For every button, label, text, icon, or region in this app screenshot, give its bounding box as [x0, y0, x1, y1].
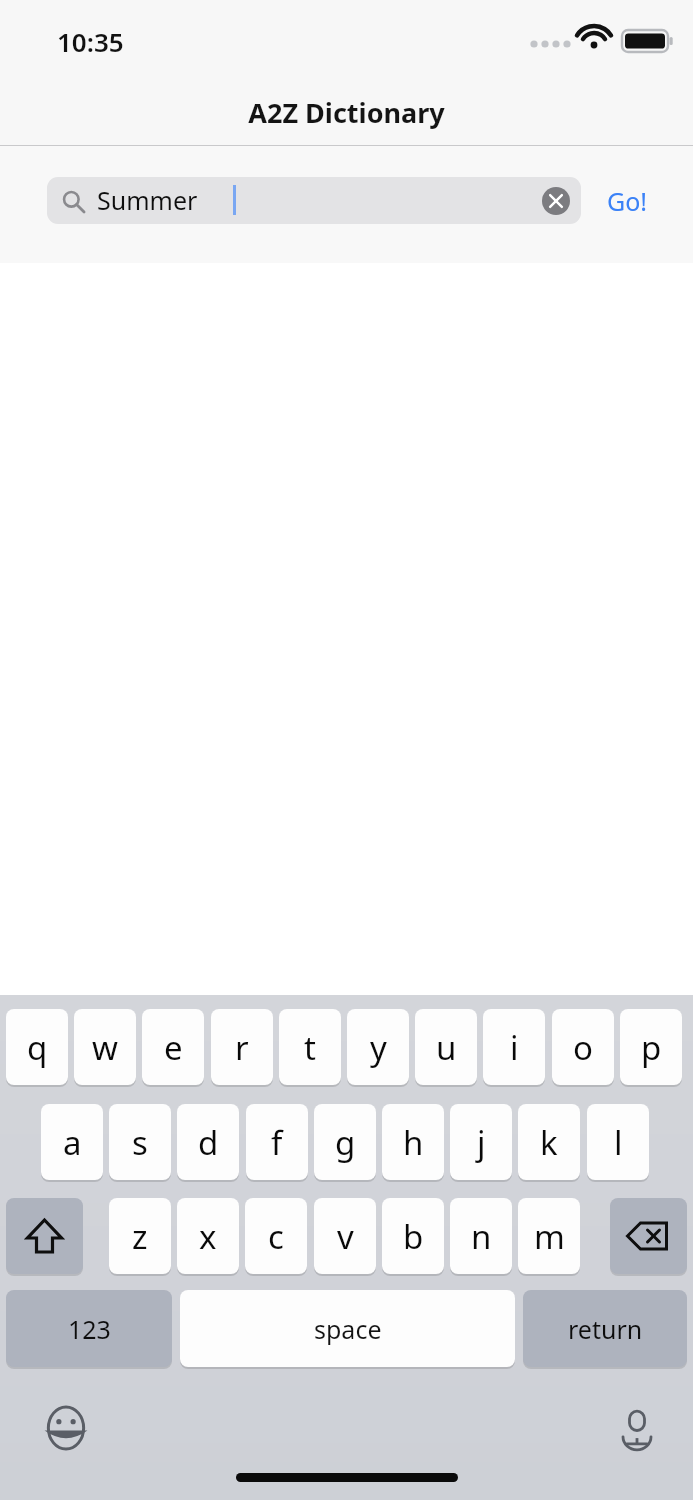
staticText: x [199, 1214, 217, 1259]
button[interactable]: Go! [592, 177, 662, 224]
staticText: q [27, 1025, 48, 1070]
button[interactable]: t [279, 1009, 341, 1085]
staticText: g [335, 1120, 356, 1165]
staticText: 10:35 [57, 24, 124, 59]
staticText: v [337, 1214, 354, 1259]
staticText: p [641, 1025, 662, 1070]
staticText: a [63, 1120, 82, 1165]
button[interactable]: return [523, 1290, 687, 1367]
button[interactable]: j [450, 1104, 512, 1180]
staticText: h [403, 1120, 424, 1165]
staticText: n [471, 1214, 492, 1259]
staticText: e [164, 1025, 183, 1070]
button[interactable]: y [347, 1009, 409, 1085]
staticText: f [271, 1120, 283, 1165]
button[interactable]: z [109, 1198, 171, 1274]
button[interactable]: m [518, 1198, 580, 1274]
button[interactable]: q [6, 1009, 68, 1085]
button[interactable]: Emoji keyboard [38, 1400, 94, 1456]
staticText: o [573, 1025, 593, 1070]
staticText: c [268, 1214, 284, 1259]
staticText: space [314, 1312, 382, 1346]
button[interactable]: h [382, 1104, 444, 1180]
button[interactable]: d [177, 1104, 239, 1180]
button[interactable]: Summer [47, 177, 581, 224]
button[interactable]: s [109, 1104, 171, 1180]
button[interactable]: Clear text [542, 187, 570, 215]
staticText: m [534, 1214, 565, 1259]
button[interactable]: Backspace [610, 1198, 687, 1274]
button[interactable]: Voice input [609, 1400, 665, 1456]
button[interactable]: c [245, 1198, 307, 1274]
button[interactable]: 123 [6, 1290, 172, 1367]
staticText: j [477, 1120, 486, 1165]
button[interactable]: Shift [6, 1198, 83, 1274]
staticText: w [92, 1025, 118, 1070]
staticText: u [436, 1025, 457, 1070]
button[interactable]: r [211, 1009, 273, 1085]
staticText: Summer [97, 183, 198, 217]
staticText: b [403, 1214, 424, 1259]
staticText: A2Z Dictionary [0, 94, 693, 131]
staticText: Go! [607, 184, 648, 218]
button[interactable]: o [552, 1009, 614, 1085]
button[interactable]: space [180, 1290, 515, 1367]
staticText: i [510, 1025, 519, 1070]
button[interactable]: u [415, 1009, 477, 1085]
button[interactable]: a [41, 1104, 103, 1180]
staticText: d [198, 1120, 219, 1165]
button[interactable]: w [74, 1009, 136, 1085]
staticText: z [132, 1214, 148, 1259]
button[interactable]: i [483, 1009, 545, 1085]
button[interactable]: v [314, 1198, 376, 1274]
button[interactable]: f [246, 1104, 308, 1180]
staticText: 123 [68, 1312, 111, 1346]
button[interactable]: l [587, 1104, 649, 1180]
staticText: l [614, 1120, 623, 1165]
button[interactable]: n [450, 1198, 512, 1274]
staticText: return [568, 1312, 643, 1346]
button[interactable]: p [620, 1009, 682, 1085]
staticText: s [132, 1120, 148, 1165]
button[interactable]: k [518, 1104, 580, 1180]
staticText: t [304, 1025, 316, 1070]
staticText: k [540, 1120, 558, 1165]
staticText: r [235, 1025, 249, 1070]
staticText: y [370, 1025, 387, 1070]
button[interactable]: b [382, 1198, 444, 1274]
button[interactable]: e [142, 1009, 204, 1085]
button[interactable]: x [177, 1198, 239, 1274]
button[interactable]: g [314, 1104, 376, 1180]
